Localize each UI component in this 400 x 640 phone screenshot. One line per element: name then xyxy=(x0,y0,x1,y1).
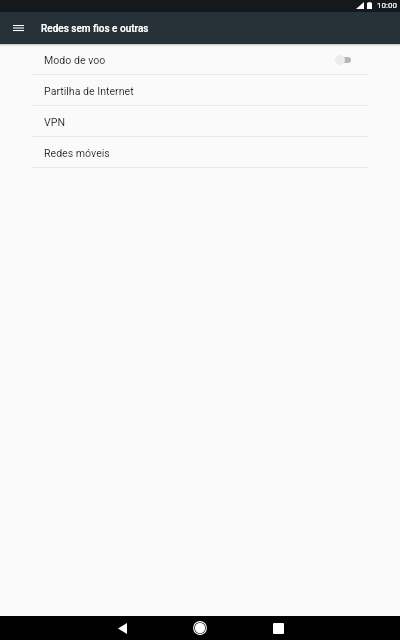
staticText: Partilha de Internet xyxy=(44,85,351,97)
button[interactable]: Redes móveis xyxy=(0,137,400,168)
button[interactable]: Partilha de Internet xyxy=(0,75,400,106)
staticText: Redes sem fios e outras xyxy=(41,23,149,35)
button[interactable]: VPN xyxy=(0,106,400,137)
staticText: VPN xyxy=(44,116,351,128)
button[interactable]: Modo de voo xyxy=(0,44,400,75)
button[interactable]: Recent apps xyxy=(239,616,317,640)
staticText: Modo de voo xyxy=(44,54,335,66)
staticText: 10:00 xyxy=(377,1,397,10)
button[interactable]: Open navigation drawer xyxy=(0,12,36,44)
button[interactable]: Back xyxy=(83,616,161,640)
button[interactable]: Home xyxy=(161,616,239,640)
staticText: Redes móveis xyxy=(44,147,351,159)
